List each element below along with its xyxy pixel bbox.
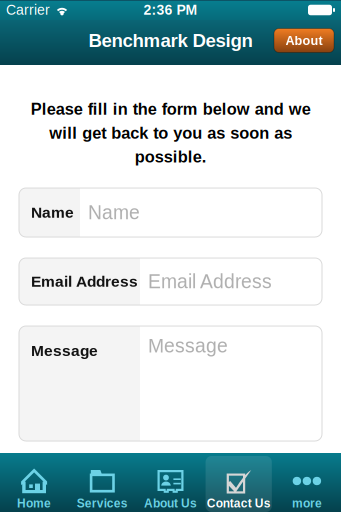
button[interactable]: About Us (136, 453, 205, 512)
staticText: 2:36 PM (143, 2, 197, 18)
staticText: Name (88, 202, 140, 223)
button[interactable]: Contact Us (205, 453, 273, 512)
staticText: Benchmark Design (88, 30, 252, 51)
staticText: About Us (144, 497, 197, 510)
button[interactable]: About (274, 28, 334, 52)
button[interactable]: more (273, 453, 341, 512)
staticText: Services (77, 497, 128, 510)
staticText: Home (17, 497, 51, 510)
staticText: Message (148, 335, 228, 357)
staticText: more (292, 497, 322, 510)
staticText: Name (31, 204, 74, 221)
staticText: Contact Us (207, 497, 271, 510)
staticText: Email Address (31, 273, 138, 290)
staticText: Please fill in the form below and we wil… (30, 100, 310, 166)
staticText: Message (31, 342, 98, 359)
staticText: About (285, 33, 322, 48)
button[interactable]: Home (0, 453, 68, 512)
staticText: Email Address (148, 271, 272, 292)
staticText: Carrier (6, 2, 50, 18)
button[interactable]: Services (68, 453, 136, 512)
